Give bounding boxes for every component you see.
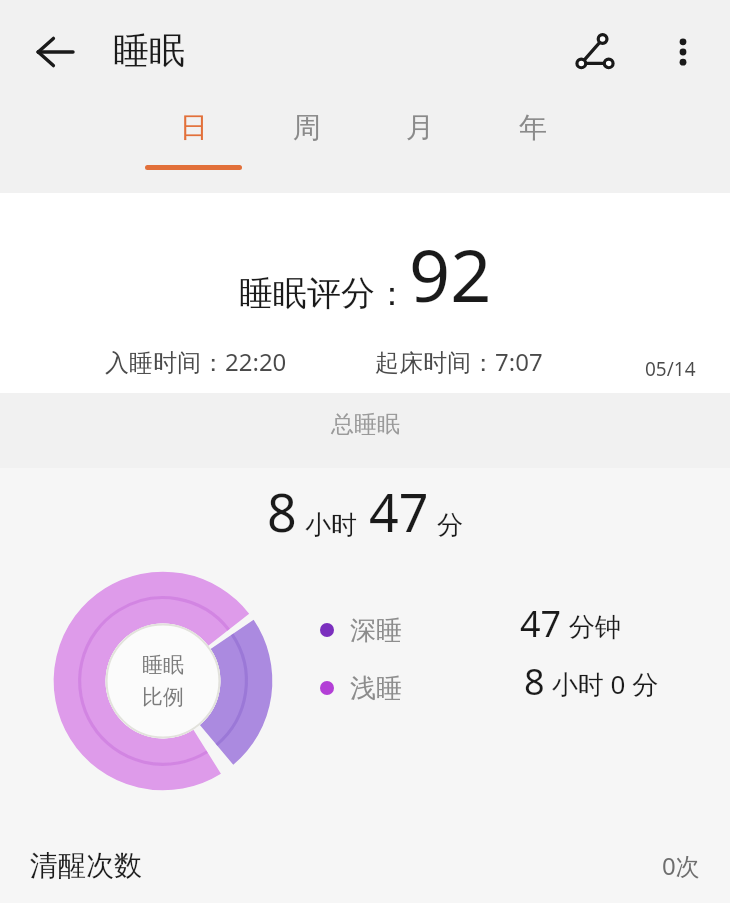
staticText: 年 [519,110,547,145]
staticText: 起床时间：7:07 [375,345,543,378]
button[interactable]: 清醒次数 [0,827,730,903]
staticText: 睡眠评分： [239,272,409,315]
staticText: 睡眠 [113,28,185,73]
staticText: 分 [437,509,463,542]
staticText: 入睡时间：22:20 [105,345,287,378]
staticText: 8 [267,476,297,547]
staticText: 日 [180,110,208,145]
staticText: 清醒次数 [30,848,142,883]
button[interactable]: 日 [141,110,245,186]
button[interactable]: Back [22,19,88,85]
staticText: 浅睡 [350,672,402,705]
staticText: 比例 [142,684,184,710]
staticText: 0次 [662,849,700,882]
staticText: 睡眠 [142,652,184,678]
button[interactable]: Share [562,19,628,85]
staticText: 小时 0 分 [545,666,659,702]
button[interactable]: 月 [368,110,472,186]
button[interactable]: 年 [481,110,585,186]
staticText: 47 [520,599,562,648]
staticText: 92 [409,225,492,323]
staticText: 总睡眠 [331,410,400,439]
staticText: 深睡 [350,614,402,647]
staticText: 小时 [305,509,357,542]
staticText: 周 [293,110,321,145]
staticText: 月 [406,110,434,145]
staticText: 47 [369,476,429,547]
staticText: 05/14 [645,356,696,382]
button[interactable]: 周 [255,110,359,186]
button[interactable]: 浅睡 [320,662,730,714]
button[interactable]: 深睡 [320,604,730,656]
button[interactable]: More options [650,19,716,85]
staticText: 8 [524,657,545,706]
staticText: 分钟 [562,608,621,644]
